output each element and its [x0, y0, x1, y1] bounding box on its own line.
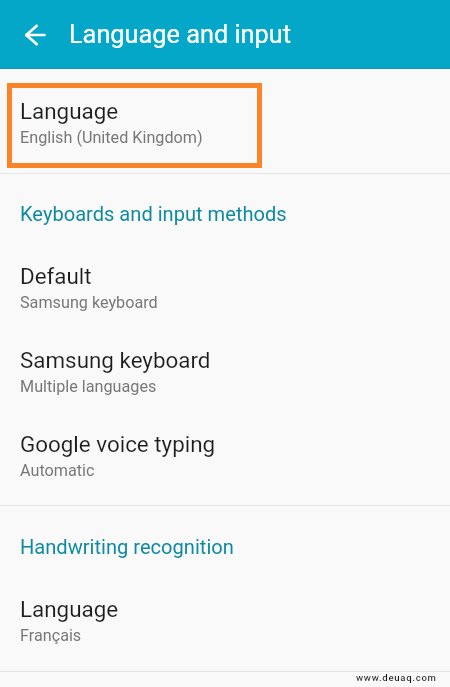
staticText: Default	[20, 263, 92, 289]
staticText: Language	[20, 596, 119, 622]
button[interactable]: Language	[0, 78, 450, 168]
staticText: Language	[20, 98, 119, 124]
button[interactable]: Default	[0, 255, 450, 338]
staticText: English (United Kingdom)	[20, 128, 203, 147]
staticText: Handwriting recognition	[20, 535, 234, 559]
staticText: Samsung keyboard	[20, 293, 158, 312]
button[interactable]: Google voice typing	[0, 423, 450, 505]
staticText: Google voice typing	[20, 431, 216, 457]
staticText: Multiple languages	[20, 377, 157, 396]
staticText: Language and input	[69, 20, 291, 50]
button[interactable]: Samsung keyboard	[0, 338, 450, 423]
staticText: Automatic	[20, 461, 95, 480]
staticText: Samsung keyboard	[20, 347, 211, 373]
staticText: www.deuaq.com	[356, 672, 437, 683]
staticText: Français	[20, 626, 82, 645]
button[interactable]: Navigate up	[11, 11, 58, 58]
button[interactable]: Language	[0, 588, 450, 671]
staticText: Keyboards and input methods	[20, 202, 287, 226]
